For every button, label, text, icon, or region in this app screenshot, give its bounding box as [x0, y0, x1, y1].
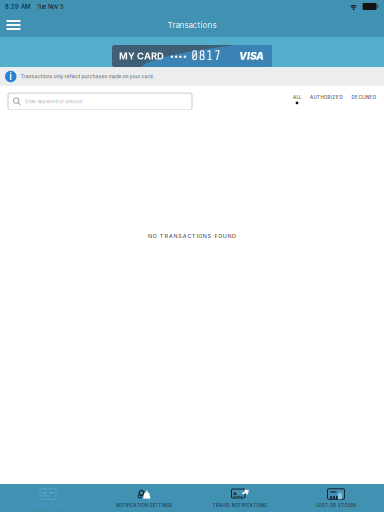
button[interactable]: TRANSACTIONS	[0, 484, 96, 512]
staticText: TRANSACTIONS	[29, 503, 67, 508]
staticText: Transactions only reflect purchases made…	[20, 73, 153, 79]
staticText: Tue Nov 5	[37, 3, 64, 10]
staticText: TRAVEL NOTIFICATIONS	[213, 503, 267, 508]
staticText: NO TRANSACTIONS FOUND	[148, 233, 236, 239]
button[interactable]: AUTHORIZED	[310, 95, 342, 104]
button[interactable]: DECLINED	[351, 95, 376, 104]
staticText: Enter keyword or amount	[25, 99, 82, 104]
staticText: NOTIFICATION SETTINGS	[115, 503, 172, 508]
staticText: ••••	[170, 51, 187, 61]
staticText: ALL	[293, 95, 301, 100]
button[interactable]: My Card ending 0817	[112, 45, 272, 67]
button[interactable]: LOST OR STOLEN	[288, 484, 384, 512]
staticText: 0817	[191, 48, 221, 63]
staticText: MY CARD	[119, 50, 164, 62]
staticText: VISA	[239, 50, 264, 62]
staticText: 8:29 AM	[5, 3, 30, 10]
button[interactable]: ALL	[293, 95, 301, 104]
button[interactable]: Menu	[0, 13, 27, 37]
button[interactable]: TRAVEL NOTIFICATIONS	[192, 484, 288, 512]
staticText: AUTHORIZED	[310, 95, 342, 100]
button[interactable]: Enter keyword or amount	[8, 93, 192, 110]
staticText: LOST OR STOLEN	[317, 503, 355, 508]
button[interactable]: NOTIFICATION SETTINGS	[96, 484, 192, 512]
staticText: i	[9, 71, 12, 82]
staticText: Transactions	[167, 20, 216, 30]
staticText: DECLINED	[351, 95, 376, 100]
